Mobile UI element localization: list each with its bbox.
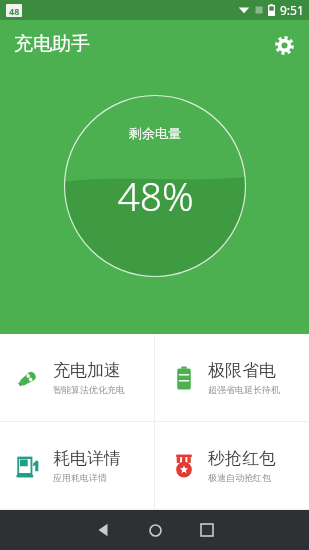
button[interactable]: Recents: [187, 510, 227, 550]
staticText: 超强省电延长待机: [208, 384, 280, 395]
staticText: 耗电详情: [53, 448, 121, 469]
staticText: 应用耗电详情: [53, 472, 107, 483]
staticText: 极限省电: [208, 360, 276, 381]
button[interactable]: 极限省电: [155, 334, 309, 421]
staticText: 充电加速: [53, 360, 121, 381]
staticText: 48: [9, 5, 20, 17]
button[interactable]: Home: [135, 510, 175, 550]
button[interactable]: 充电加速: [0, 334, 154, 421]
button[interactable]: 耗电详情: [0, 422, 154, 509]
staticText: 充电助手: [14, 32, 90, 56]
staticText: 秒抢红包: [208, 448, 276, 469]
button[interactable]: Back: [83, 510, 123, 550]
staticText: 智能算法优化充电: [53, 384, 125, 395]
button[interactable]: 秒抢红包: [155, 422, 309, 509]
staticText: 剩余电量: [129, 125, 181, 141]
staticText: 9:51: [280, 2, 304, 18]
staticText: 极速自动抢红包: [208, 472, 271, 483]
button[interactable]: Settings: [267, 28, 301, 62]
staticText: 48%: [117, 169, 194, 222]
